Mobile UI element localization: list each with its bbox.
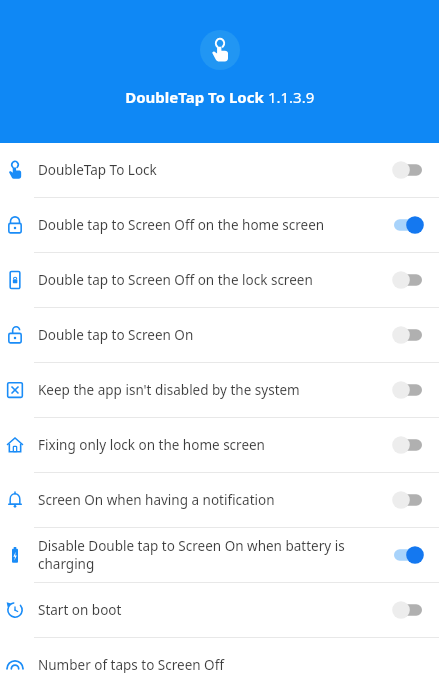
button[interactable]: Screen On when having a notification [0,473,439,527]
staticText: Start on boot [38,601,383,619]
staticText: Keep the app isn't disabled by the syste… [38,381,383,399]
staticText: Double tap to Screen Off on the lock scr… [38,271,383,289]
staticText: Number of taps to Screen Off [38,656,425,673]
staticText: Double tap to Screen On [38,326,383,344]
button[interactable]: Double tap to Screen Off on the home scr… [0,198,439,252]
staticText: DoubleTap To Lock [125,87,264,107]
staticText: Screen On when having a notification [38,491,383,509]
button[interactable]: Double tap to Screen On [0,308,439,362]
button[interactable]: Fixing only lock on the home screen [0,418,439,472]
button[interactable]: DoubleTap To Lock [0,143,439,197]
staticText: 1.1.3.9 [264,87,315,107]
button[interactable]: Start on boot [0,583,439,637]
button[interactable]: Disable Double tap to Screen On when bat… [0,528,439,582]
button[interactable]: Keep the app isn't disabled by the syste… [0,363,439,417]
staticText: DoubleTap To Lock [38,161,383,179]
staticText: Fixing only lock on the home screen [38,436,383,454]
staticText: Disable Double tap to Screen On when bat… [38,537,383,573]
button[interactable]: Double tap to Screen Off on the lock scr… [0,253,439,307]
staticText: Double tap to Screen Off on the home scr… [38,216,383,234]
button[interactable]: Number of taps to Screen Off [0,638,439,673]
